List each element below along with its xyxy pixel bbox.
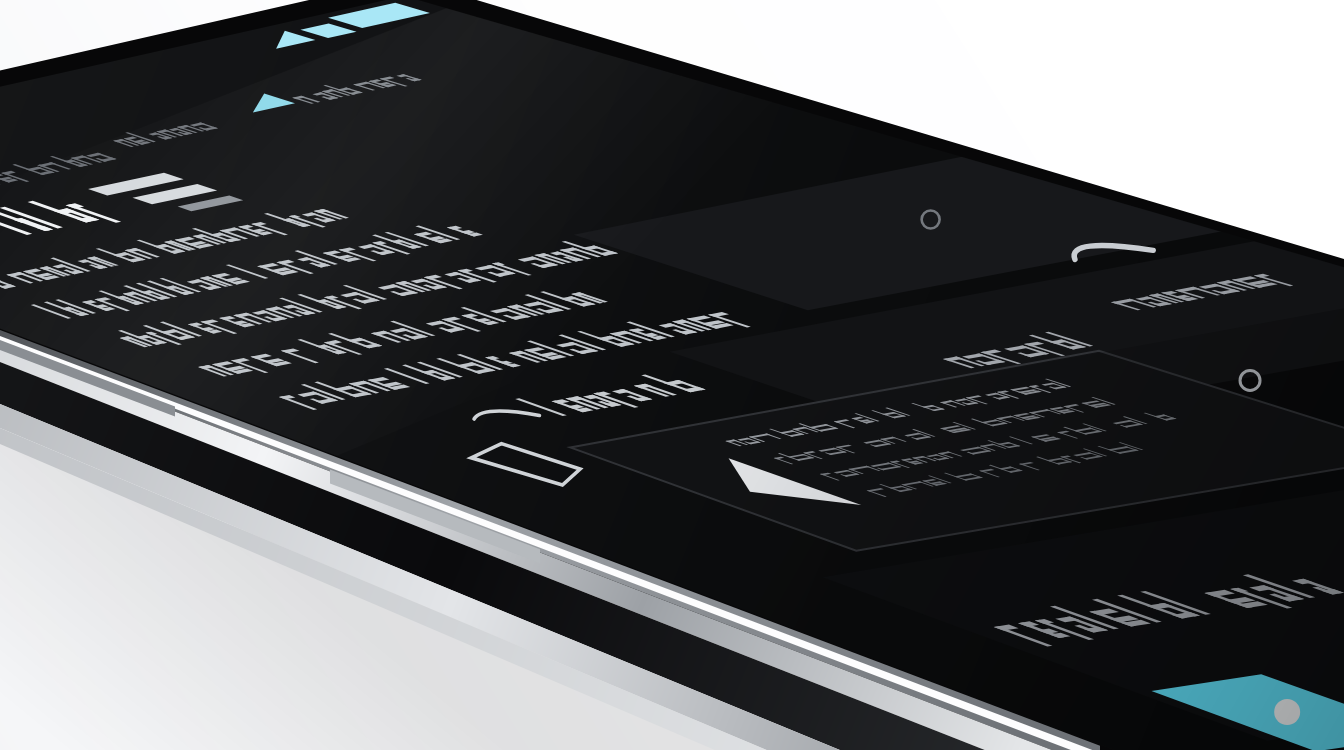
button[interactable]: Sort and filter list [150, 150, 340, 210]
button[interactable]: Open app [1190, 660, 1344, 750]
button[interactable]: List item 3 [80, 305, 700, 360]
button[interactable]: Featured card [600, 300, 1160, 420]
button[interactable]: List item 1 [0, 205, 620, 260]
button[interactable]: List item 2 [40, 255, 660, 310]
button[interactable]: Notification card [760, 380, 1180, 560]
